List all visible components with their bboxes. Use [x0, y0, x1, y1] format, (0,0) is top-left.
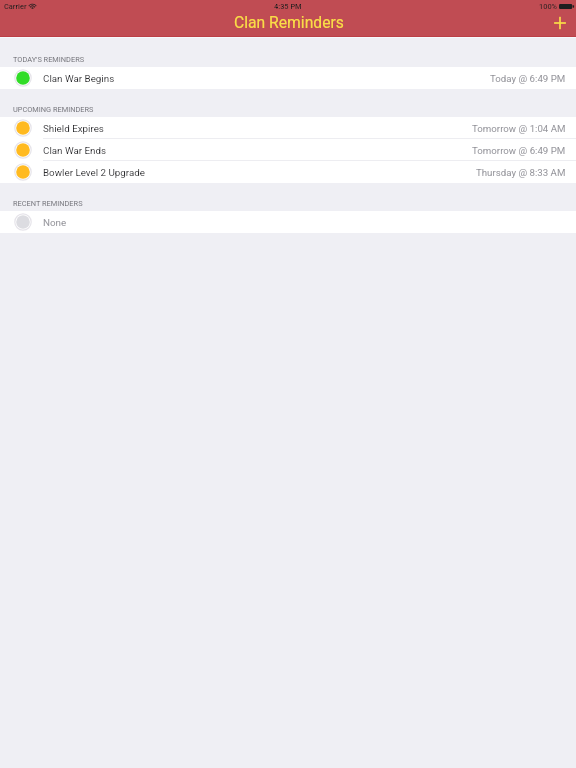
button[interactable]: Add reminder	[548, 11, 572, 35]
button[interactable]: Bowler Level 2 Upgrade	[0, 161, 576, 183]
staticText: 4:35 PM	[274, 2, 302, 11]
button[interactable]: Shield Expires	[0, 117, 576, 139]
staticText: Thursday @ 8:33 AM	[476, 167, 566, 178]
staticText: RECENT REMINDERS	[13, 199, 83, 208]
staticText: Tomorrow @ 6:49 PM	[472, 145, 566, 156]
button[interactable]: Clan War Ends	[0, 139, 576, 161]
staticText: Clan War Ends	[43, 145, 107, 156]
staticText: Clan Reminders	[234, 13, 344, 31]
staticText: TODAY'S REMINDERS	[13, 55, 85, 64]
staticText: Carrier	[4, 2, 27, 11]
staticText: UPCOMING REMINDERS	[13, 105, 94, 114]
button[interactable]: None	[0, 211, 576, 233]
staticText: Bowler Level 2 Upgrade	[43, 167, 145, 178]
staticText: Shield Expires	[43, 123, 104, 134]
staticText: Tomorrow @ 1:04 AM	[472, 123, 566, 134]
button[interactable]: Clan War Begins	[0, 67, 576, 89]
staticText: None	[43, 217, 67, 228]
staticText: Clan War Begins	[43, 73, 115, 84]
staticText: Today @ 6:49 PM	[490, 73, 566, 84]
staticText: 100%	[539, 2, 558, 11]
